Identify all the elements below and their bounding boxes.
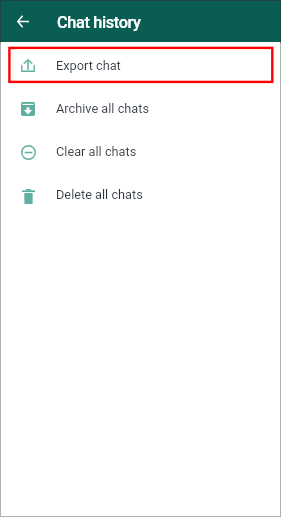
staticText: Chat history (57, 13, 141, 32)
staticText: Export chat (56, 58, 121, 73)
button[interactable]: Export chat (0, 44, 281, 87)
staticText: Delete all chats (56, 187, 143, 202)
staticText: Clear all chats (56, 144, 137, 159)
staticText: Archive all chats (56, 101, 150, 116)
button[interactable]: Back (10, 9, 34, 33)
button[interactable]: Delete all chats (0, 173, 281, 216)
button[interactable]: Archive all chats (0, 87, 281, 130)
button[interactable]: Clear all chats (0, 130, 281, 173)
